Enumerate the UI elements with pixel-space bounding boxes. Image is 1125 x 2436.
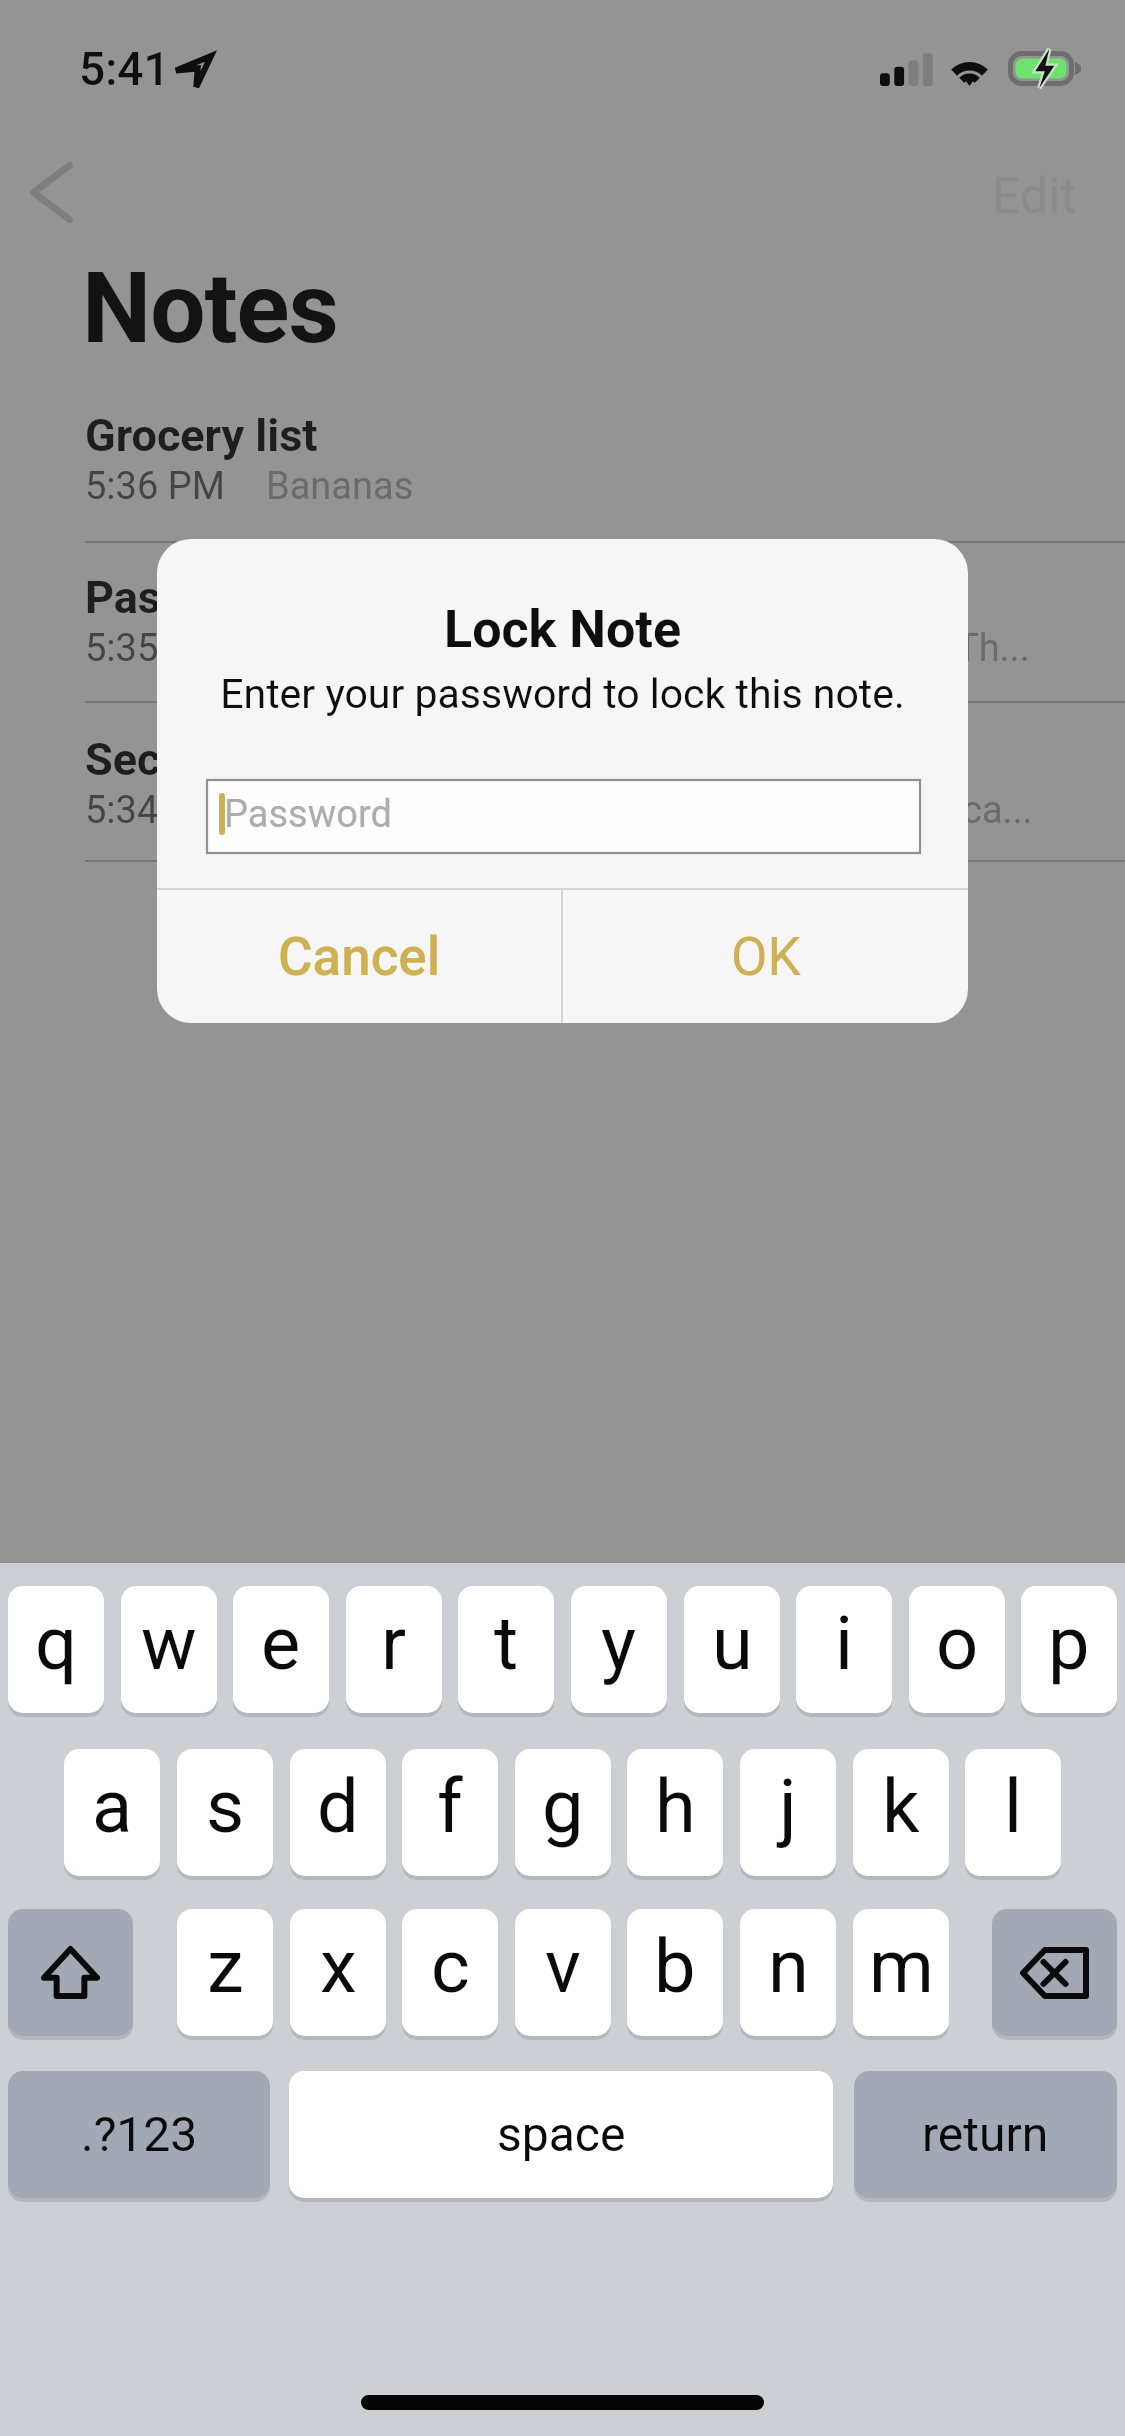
button[interactable]: OK (563, 890, 968, 1023)
staticText: y (601, 1600, 637, 1687)
staticText: z (207, 1923, 244, 2010)
staticText: w (141, 1600, 197, 1687)
staticText: space (497, 2106, 626, 2162)
button[interactable]: a (64, 1749, 160, 1876)
staticText: Password (224, 792, 392, 837)
staticText: Grocery list (85, 409, 318, 462)
staticText: 5:34 PM (85, 788, 225, 833)
staticText: d (317, 1763, 359, 1850)
staticText: h (655, 1763, 696, 1850)
staticText: OK (731, 926, 801, 988)
button[interactable]: t (458, 1586, 554, 1713)
button[interactable]: Shift (8, 1909, 133, 2036)
button[interactable]: o (909, 1586, 1005, 1713)
staticText: c (431, 1923, 470, 2010)
staticText: f (437, 1763, 463, 1850)
button[interactable]: return (854, 2071, 1117, 2198)
button[interactable]: u (684, 1586, 780, 1713)
staticText: b (654, 1923, 696, 2010)
button[interactable]: space (289, 2071, 833, 2198)
button[interactable]: f (402, 1749, 498, 1876)
staticText: v (545, 1923, 581, 2010)
button[interactable]: w (121, 1586, 217, 1713)
staticText: Cancel (278, 926, 441, 988)
button[interactable]: p (1021, 1586, 1117, 1713)
button[interactable]: q (8, 1586, 104, 1713)
staticText: 5:35 PM (85, 626, 225, 671)
staticText: u (712, 1600, 753, 1687)
staticText: Bananas (266, 464, 414, 509)
button[interactable]: g (515, 1749, 611, 1876)
button[interactable]: Back (0, 142, 104, 250)
button[interactable]: v (515, 1909, 611, 2036)
button[interactable]: .?123 (8, 2071, 270, 2198)
staticText: g (542, 1763, 584, 1850)
button[interactable]: h (627, 1749, 723, 1876)
staticText: n (768, 1923, 809, 2010)
staticText: t (494, 1600, 519, 1687)
staticText: e (261, 1600, 301, 1687)
staticText: i (835, 1600, 853, 1687)
button[interactable]: y (571, 1586, 667, 1713)
staticText: j (779, 1763, 797, 1850)
button[interactable]: s (177, 1749, 273, 1876)
staticText: Enter your password to lock this note. (220, 670, 905, 718)
staticText: a (92, 1763, 133, 1850)
staticText: r (381, 1600, 407, 1687)
staticText: Th... (956, 626, 1030, 671)
staticText: s (206, 1763, 245, 1850)
button[interactable]: d (290, 1749, 386, 1876)
staticText: return (922, 2106, 1049, 2162)
button[interactable]: n (740, 1909, 836, 2036)
button[interactable]: i (796, 1586, 892, 1713)
staticText: k (882, 1763, 920, 1850)
staticText: p (1048, 1600, 1090, 1687)
staticText: o (936, 1600, 979, 1687)
staticText: Edit (992, 167, 1077, 226)
button[interactable]: x (290, 1909, 386, 2036)
button[interactable]: l (965, 1749, 1061, 1876)
button[interactable]: b (627, 1909, 723, 2036)
staticText: 5:41 (79, 42, 170, 96)
staticText: m (869, 1923, 934, 2010)
button[interactable]: m (853, 1909, 949, 2036)
button[interactable]: z (177, 1909, 273, 2036)
staticText: Lock Note (444, 599, 681, 660)
staticText: Secrets (85, 733, 240, 786)
button[interactable]: e (233, 1586, 329, 1713)
staticText: Notes (82, 251, 338, 366)
button[interactable]: Backspace (992, 1909, 1117, 2036)
staticText: x (320, 1923, 357, 2010)
staticText: q (35, 1600, 78, 1687)
staticText: 5:36 PM (85, 464, 225, 509)
staticText: Password (85, 571, 284, 624)
button[interactable]: j (740, 1749, 836, 1876)
staticText: .?123 (81, 2106, 198, 2162)
button[interactable]: k (853, 1749, 949, 1876)
button[interactable]: c (402, 1909, 498, 2036)
button[interactable]: r (346, 1586, 442, 1713)
staticText: l (1004, 1763, 1022, 1850)
button[interactable]: Cancel (157, 890, 561, 1023)
staticText: ca... (962, 788, 1033, 833)
